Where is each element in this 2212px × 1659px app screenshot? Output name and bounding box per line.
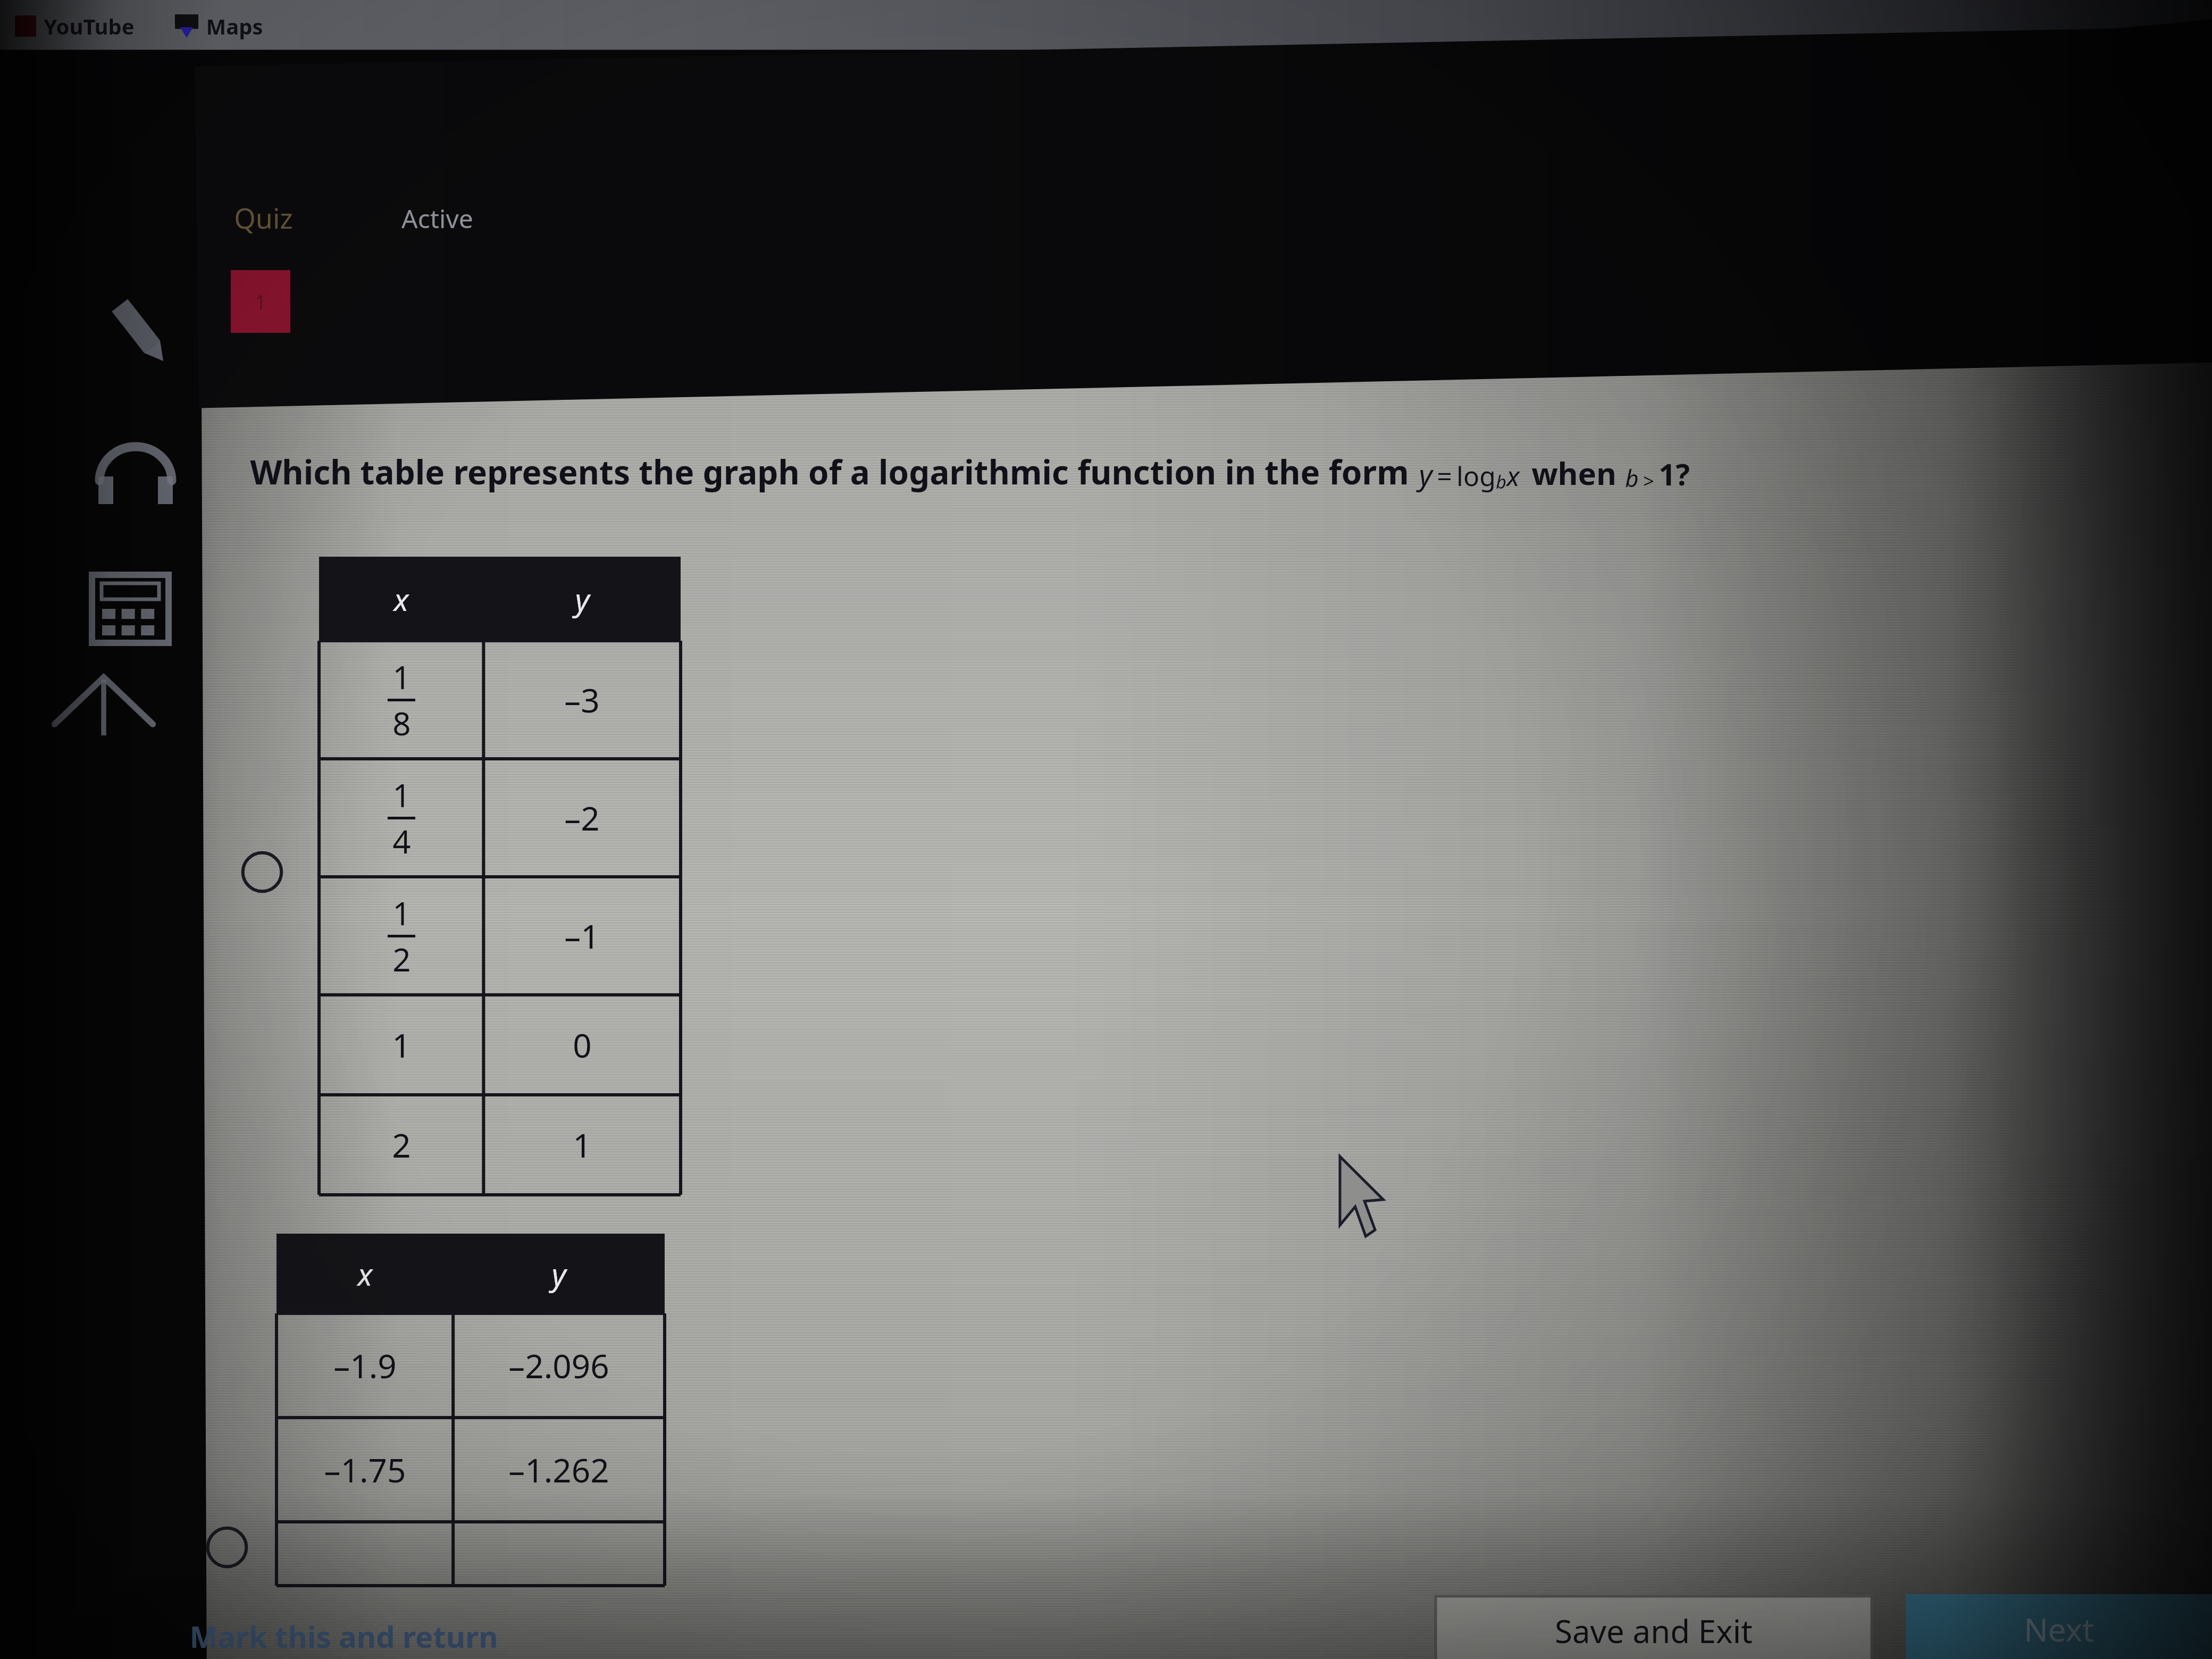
staticText: log (1456, 458, 1496, 494)
staticText: –1.75 (324, 1447, 406, 1492)
staticText: Active (401, 201, 473, 236)
staticText: 8 (392, 701, 411, 745)
staticText: –1.9 (333, 1343, 397, 1388)
staticText: Next (2024, 1607, 2094, 1651)
button[interactable]: Next (1906, 1594, 2212, 1659)
staticText: b (1625, 462, 1639, 494)
staticText: 1 (573, 1122, 592, 1167)
button[interactable]: Read aloud (82, 425, 189, 532)
staticText: 1 (392, 773, 411, 817)
button[interactable]: Select this answer (233, 843, 291, 901)
button[interactable]: Active (396, 198, 479, 239)
button[interactable]: Maps bookmark (171, 12, 267, 40)
button[interactable]: Save and Exit (1436, 1596, 1872, 1659)
button[interactable]: YouTube bookmark (11, 12, 139, 40)
button[interactable]: Mark this and return (187, 1614, 500, 1658)
staticText: –1.262 (508, 1447, 609, 1492)
staticText: Quiz (234, 199, 293, 237)
staticText: y (575, 578, 590, 620)
staticText: 1 (392, 1023, 411, 1067)
staticText: Which table represents the graph of a lo… (250, 449, 1409, 494)
staticText: x (357, 1253, 373, 1295)
staticText: 0 (573, 1023, 592, 1067)
staticText: b (1496, 470, 1506, 494)
button[interactable]: Calculator (77, 556, 183, 662)
staticText: 2 (392, 937, 411, 981)
button[interactable]: Select this answer (198, 1518, 256, 1577)
staticText: when (1531, 452, 1616, 494)
staticText: y (1419, 455, 1432, 494)
staticText: 1? (1658, 454, 1690, 494)
staticText: = (1437, 458, 1452, 494)
staticText: Maps (206, 12, 263, 40)
button[interactable]: Annotate (90, 282, 191, 383)
button[interactable]: Scroll to top (48, 646, 160, 758)
button[interactable]: Quiz (229, 196, 298, 240)
staticText: Mark this and return (189, 1616, 498, 1656)
button[interactable]: 1 (231, 270, 290, 333)
staticText: YouTube (44, 12, 135, 40)
button[interactable]: x (319, 557, 681, 1195)
staticText: 1 (255, 288, 266, 315)
staticText: 4 (392, 819, 411, 863)
staticText: 1 (392, 655, 411, 699)
staticText: –3 (564, 677, 600, 722)
staticText: x (1506, 458, 1520, 494)
staticText: x (393, 578, 409, 620)
staticText: 2 (392, 1122, 411, 1167)
staticText: –2.096 (508, 1343, 609, 1388)
staticText: > (1643, 468, 1654, 494)
staticText: –2 (564, 795, 600, 840)
staticText: 1 (392, 891, 411, 935)
staticText: –1 (564, 914, 600, 958)
staticText: y (551, 1253, 566, 1295)
button[interactable]: x (276, 1234, 665, 1586)
staticText: Save and Exit (1555, 1609, 1753, 1653)
